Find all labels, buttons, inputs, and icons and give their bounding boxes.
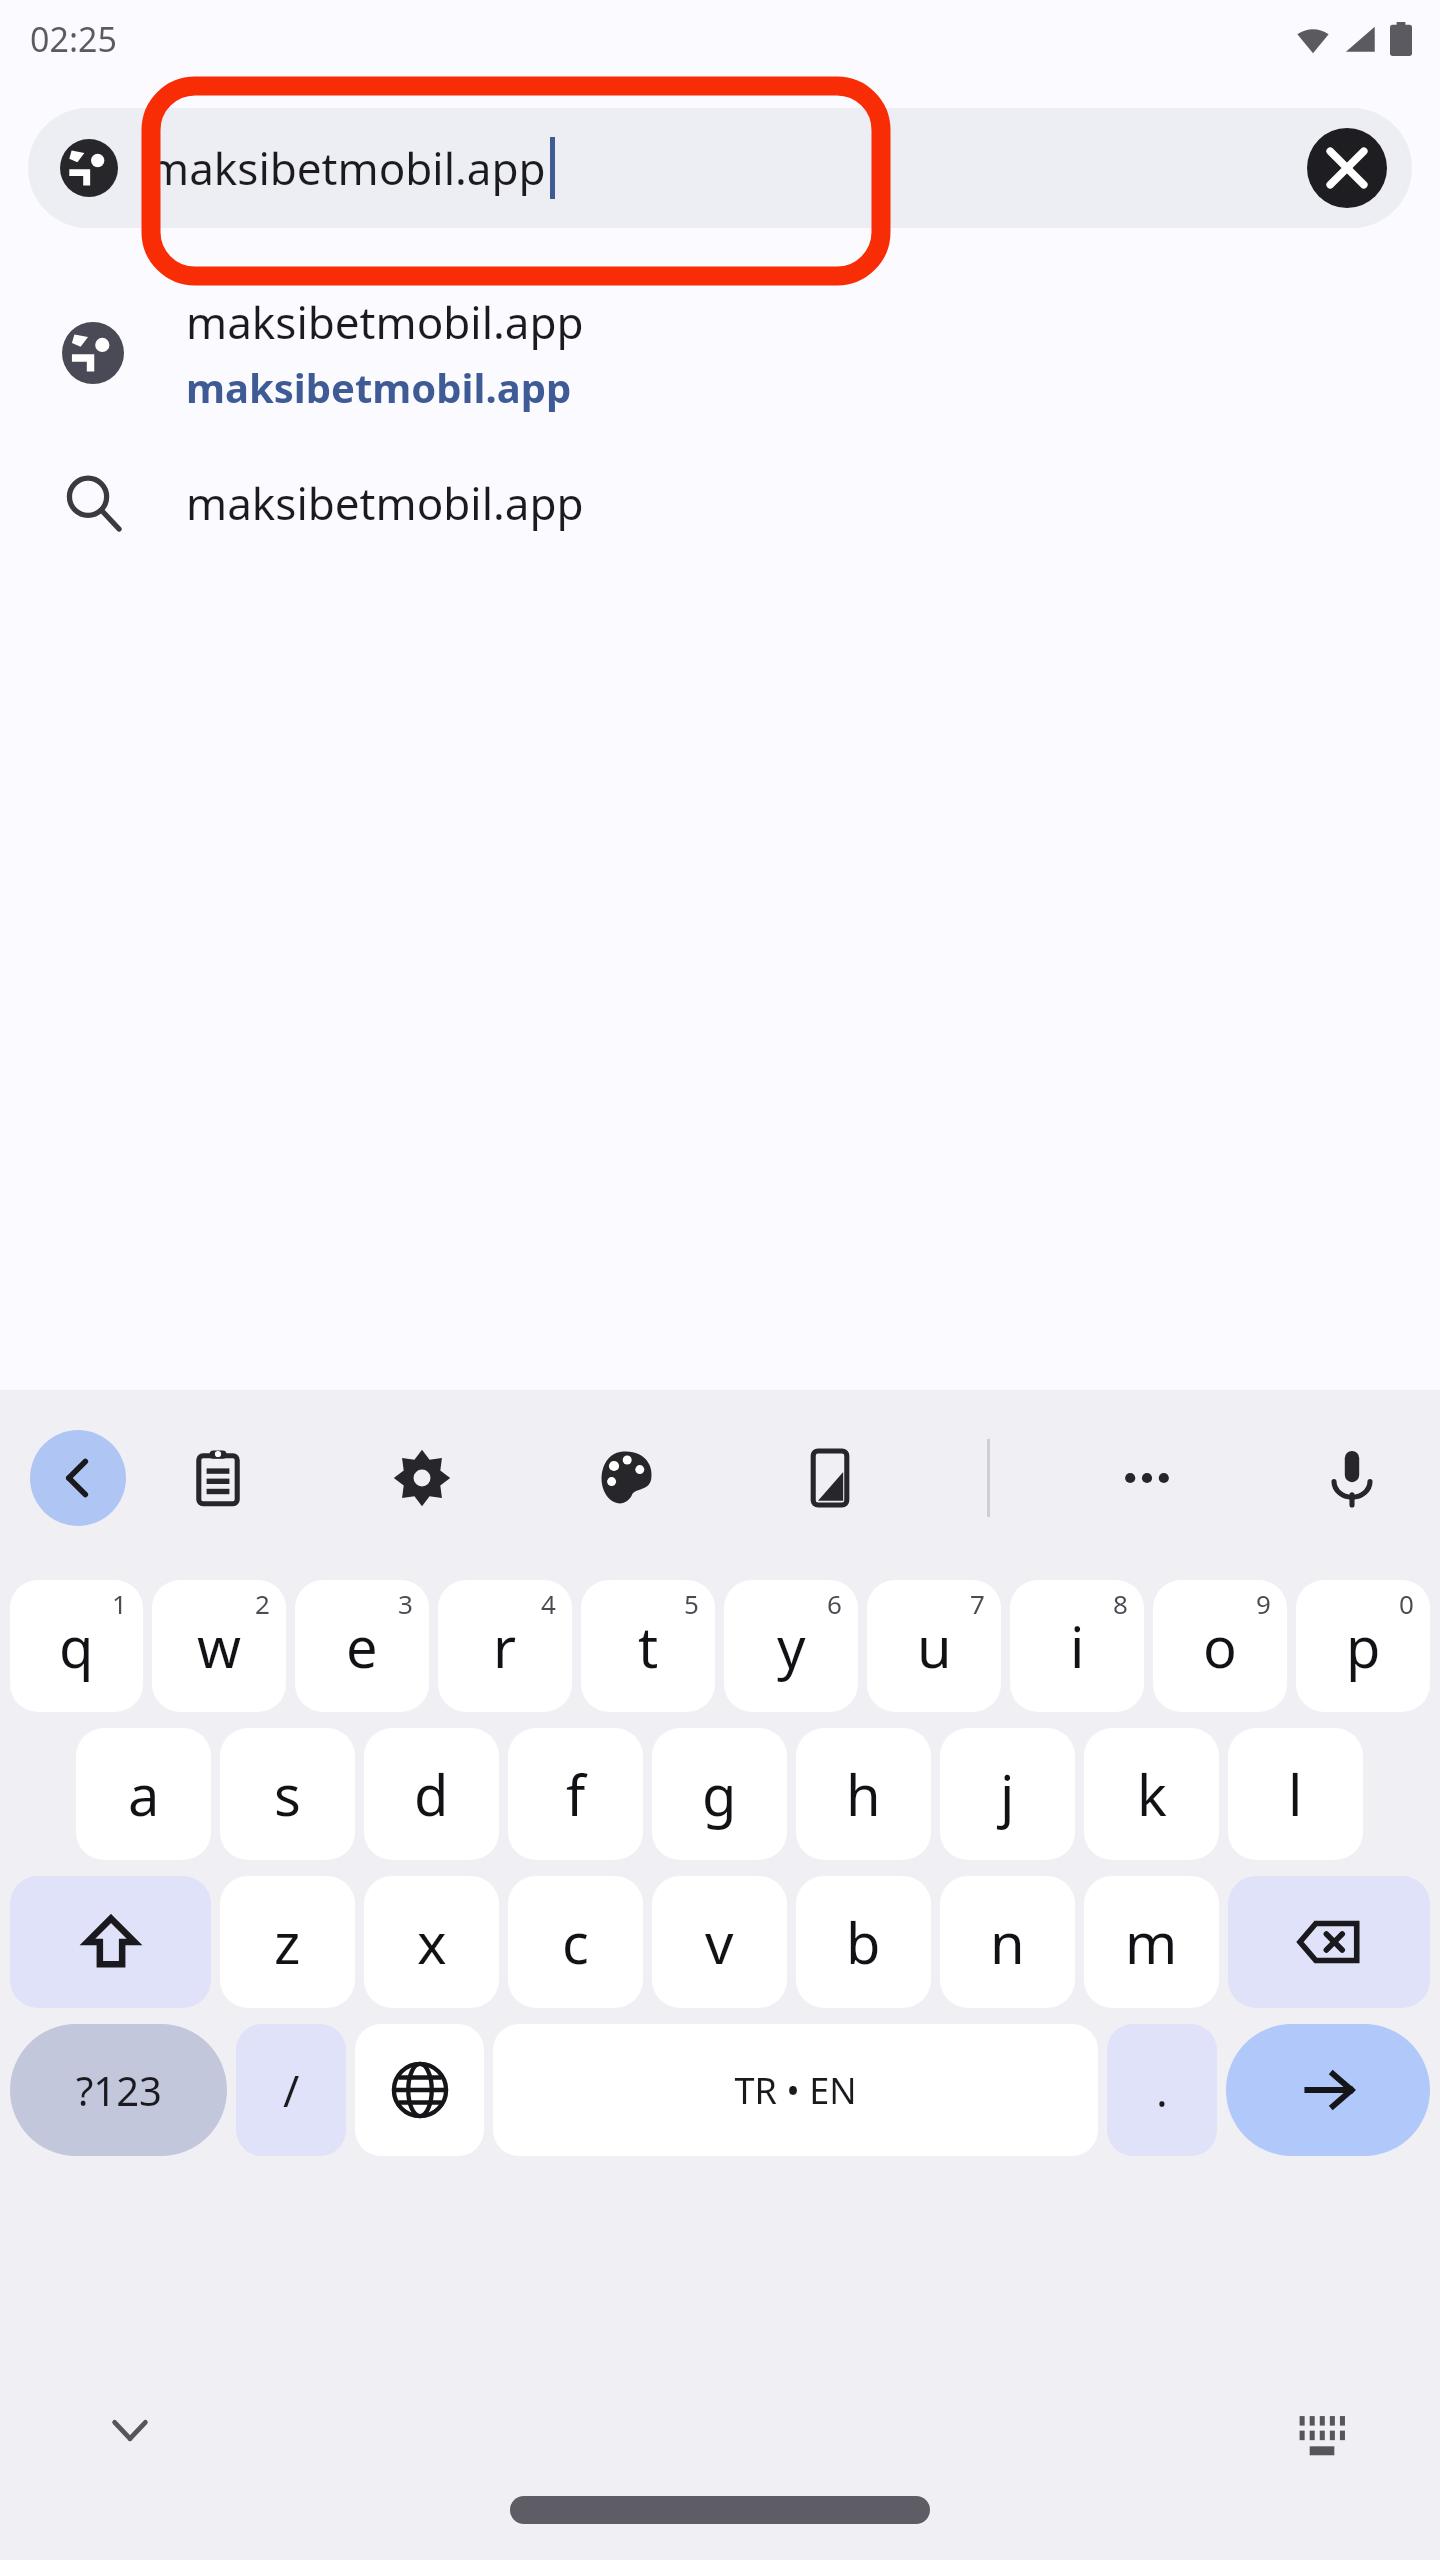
button[interactable]: b: [796, 1876, 931, 2008]
staticText: f: [566, 1756, 586, 1832]
staticText: 1: [112, 1586, 127, 1621]
button[interactable]: x: [364, 1876, 499, 2008]
button[interactable]: g: [652, 1728, 787, 1860]
button[interactable]: Enter: [1226, 2024, 1430, 2156]
button[interactable]: Site info: [28, 108, 1412, 228]
staticText: 3: [398, 1586, 413, 1621]
staticText: i: [1070, 1608, 1085, 1684]
button[interactable]: .: [1107, 2024, 1217, 2156]
staticText: ?123: [76, 2063, 162, 2117]
staticText: 2: [255, 1586, 270, 1621]
staticText: 6: [827, 1586, 842, 1621]
staticText: 8: [1113, 1586, 1128, 1621]
staticText: p: [1346, 1608, 1381, 1684]
button[interactable]: Change language: [355, 2024, 484, 2156]
button[interactable]: y: [724, 1580, 858, 1712]
staticText: 4: [541, 1586, 556, 1621]
staticText: v: [705, 1904, 734, 1980]
button[interactable]: Shift: [10, 1876, 211, 2008]
button[interactable]: Clipboard: [170, 1430, 266, 1526]
staticText: 0: [1399, 1586, 1414, 1621]
staticText: maksibetmobil.app: [186, 292, 584, 352]
staticText: w: [197, 1608, 242, 1684]
button[interactable]: Backspace: [1228, 1876, 1430, 2008]
button[interactable]: n: [940, 1876, 1075, 2008]
staticText: o: [1203, 1608, 1237, 1684]
button[interactable]: d: [364, 1728, 499, 1860]
button[interactable]: k: [1084, 1728, 1219, 1860]
staticText: c: [562, 1904, 589, 1980]
button[interactable]: c: [508, 1876, 643, 2008]
button[interactable]: l: [1228, 1728, 1363, 1860]
button[interactable]: o: [1153, 1580, 1287, 1712]
staticText: r: [493, 1608, 517, 1684]
button[interactable]: Back: [30, 1430, 126, 1526]
staticText: t: [638, 1608, 659, 1684]
button[interactable]: j: [940, 1728, 1075, 1860]
staticText: maksibetmobil.app: [186, 360, 572, 414]
staticText: maksibetmobil.app: [186, 473, 584, 533]
staticText: a: [128, 1756, 160, 1832]
button[interactable]: t: [581, 1580, 715, 1712]
staticText: q: [59, 1608, 94, 1684]
staticText: g: [702, 1756, 737, 1832]
button[interactable]: Settings: [374, 1430, 470, 1526]
button[interactable]: v: [652, 1876, 787, 2008]
button[interactable]: /: [236, 2024, 346, 2156]
button[interactable]: Clear: [1304, 125, 1390, 211]
button[interactable]: p: [1296, 1580, 1430, 1712]
staticText: b: [846, 1904, 881, 1980]
staticText: s: [274, 1756, 301, 1832]
button[interactable]: i: [1010, 1580, 1144, 1712]
button[interactable]: w: [152, 1580, 286, 1712]
button[interactable]: u: [867, 1580, 1001, 1712]
staticText: x: [417, 1904, 447, 1980]
button[interactable]: Stickers: [782, 1430, 878, 1526]
button[interactable]: q: [10, 1580, 143, 1712]
button[interactable]: maksibetmobil.app: [0, 428, 1440, 578]
staticText: h: [846, 1756, 881, 1832]
button[interactable]: r: [438, 1580, 572, 1712]
button[interactable]: s: [220, 1728, 355, 1860]
button[interactable]: Switch keyboard: [1284, 2396, 1360, 2472]
staticText: m: [1125, 1904, 1178, 1980]
staticText: 7: [970, 1586, 985, 1621]
staticText: d: [414, 1756, 449, 1832]
staticText: /: [283, 2060, 300, 2120]
staticText: k: [1137, 1756, 1167, 1832]
button[interactable]: h: [796, 1728, 931, 1860]
staticText: j: [1000, 1756, 1015, 1832]
staticText: 9: [1256, 1586, 1271, 1621]
button[interactable]: e: [295, 1580, 429, 1712]
staticText: e: [346, 1608, 378, 1684]
staticText: .: [1156, 2060, 1168, 2120]
button[interactable]: m: [1084, 1876, 1219, 2008]
button[interactable]: a: [76, 1728, 211, 1860]
staticText: 5: [684, 1586, 699, 1621]
staticText: TR • EN: [734, 2066, 857, 2115]
staticText: n: [990, 1904, 1025, 1980]
staticText: y: [777, 1608, 806, 1684]
staticText: l: [1288, 1756, 1303, 1832]
staticText: u: [917, 1608, 952, 1684]
button[interactable]: f: [508, 1728, 643, 1860]
button[interactable]: Hide keyboard: [90, 2390, 170, 2470]
button[interactable]: ?123: [10, 2024, 227, 2156]
staticText: maksibetmobil.app: [148, 138, 546, 198]
button[interactable]: z: [220, 1876, 355, 2008]
button[interactable]: Voice input: [1304, 1430, 1400, 1526]
other: Site info: [56, 135, 122, 201]
button[interactable]: Theme: [578, 1430, 674, 1526]
staticText: 02:25: [30, 16, 117, 62]
staticText: z: [274, 1904, 301, 1980]
button[interactable]: maksibetmobil.app: [0, 278, 1440, 428]
button[interactable]: TR • EN: [493, 2024, 1098, 2156]
button[interactable]: More options: [1099, 1430, 1195, 1526]
